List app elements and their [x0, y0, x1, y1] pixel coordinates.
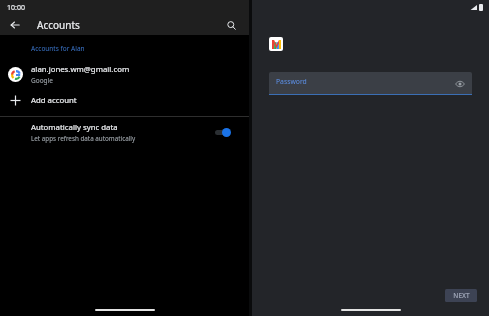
- staticText: Let apps refresh data automatically: [31, 134, 136, 143]
- button[interactable]: Search: [221, 15, 241, 35]
- button[interactable]: alan.jones.wm@gmail.com: [0, 61, 249, 88]
- staticText: Automatically sync data: [31, 122, 118, 133]
- staticText: Accounts for Alan: [31, 44, 85, 53]
- staticText: Accounts: [37, 18, 80, 32]
- staticText: Add account: [31, 95, 77, 106]
- button[interactable]: Show password: [455, 79, 465, 89]
- button[interactable]: Back: [5, 15, 25, 35]
- staticText: Google: [31, 76, 53, 85]
- staticText: alan.jones.wm@gmail.com: [31, 64, 130, 75]
- button[interactable]: Password: [269, 72, 472, 95]
- staticText: 10:00: [7, 3, 25, 13]
- button[interactable]: Add account: [0, 88, 249, 113]
- staticText: NEXT: [453, 291, 470, 300]
- button[interactable]: Automatically sync data: [0, 117, 249, 147]
- button[interactable]: Automatically sync data toggle: [213, 125, 233, 139]
- staticText: Password: [276, 77, 307, 86]
- button[interactable]: NEXT: [445, 289, 477, 302]
